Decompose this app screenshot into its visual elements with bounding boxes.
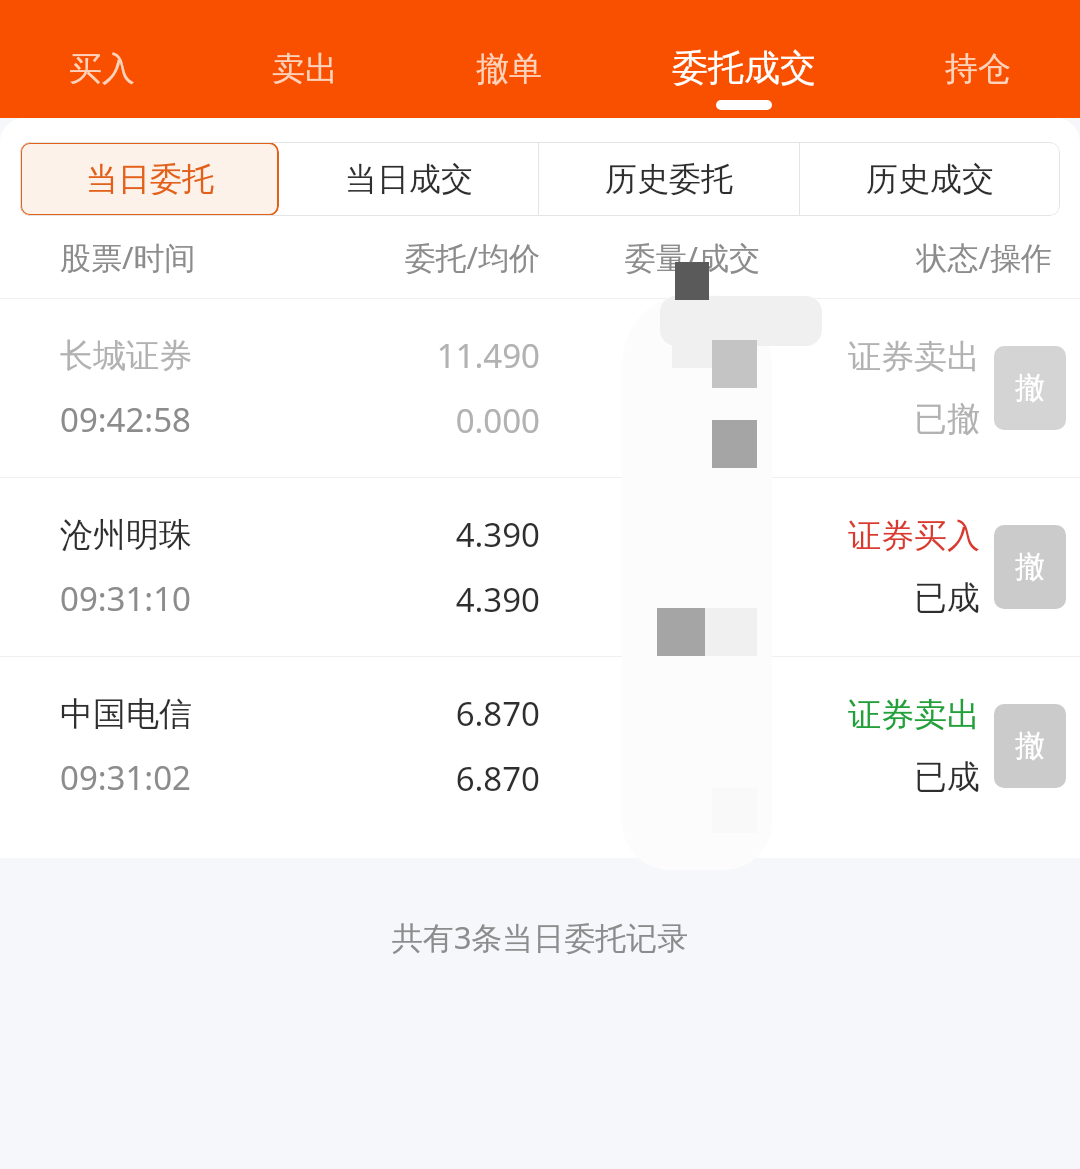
- staticText: 09:31:10: [60, 576, 191, 621]
- staticText: 6.870: [455, 756, 540, 801]
- staticText: 已成: [914, 577, 980, 619]
- button[interactable]: 长城证券: [0, 299, 1080, 477]
- staticText: 11.490: [436, 333, 540, 378]
- staticText: 6.870: [455, 691, 540, 736]
- staticText: 09:42:58: [60, 397, 191, 442]
- staticText: 委量/成交: [624, 236, 760, 278]
- staticText: 已成: [914, 756, 980, 798]
- button[interactable]: 委托成交: [611, 0, 876, 118]
- staticText: 长城证券: [60, 335, 192, 377]
- button[interactable]: 撤单 Cancel order: [994, 346, 1066, 430]
- staticText: 历史成交: [866, 159, 994, 199]
- staticText: 已撤: [914, 398, 980, 440]
- button[interactable]: 卖出: [203, 0, 407, 118]
- staticText: 中国电信: [60, 693, 192, 735]
- button[interactable]: 持仓: [876, 0, 1080, 118]
- staticText: 持仓: [945, 48, 1011, 90]
- button[interactable]: 撤单 Cancel order: [994, 704, 1066, 788]
- staticText: 撤: [1015, 548, 1045, 586]
- staticText: 当日委托: [86, 159, 214, 199]
- staticText: 委托/均价: [404, 236, 540, 278]
- button[interactable]: 中国电信: [0, 657, 1080, 835]
- staticText: 历史委托: [605, 159, 733, 199]
- staticText: 09:31:02: [60, 755, 191, 800]
- staticText: 4.390: [455, 577, 540, 622]
- button[interactable]: 当日委托: [20, 142, 279, 216]
- staticText: 状态/操作: [916, 236, 1052, 278]
- staticText: 0.000: [455, 398, 540, 443]
- staticText: 股票/时间: [60, 236, 196, 278]
- button[interactable]: 历史委托: [539, 142, 799, 216]
- staticText: 当日成交: [345, 159, 473, 199]
- staticText: 撤: [1015, 727, 1045, 765]
- staticText: 4.390: [455, 512, 540, 557]
- button[interactable]: 当日成交: [279, 142, 538, 216]
- button[interactable]: 撤单: [407, 0, 611, 118]
- staticText: 撤: [1015, 369, 1045, 407]
- staticText: 买入: [69, 48, 135, 90]
- staticText: 委托成交: [672, 45, 816, 90]
- button[interactable]: 撤单 Cancel order: [994, 525, 1066, 609]
- button[interactable]: 沧州明珠: [0, 478, 1080, 656]
- staticText: 卖出: [272, 48, 338, 90]
- staticText: 撤单: [476, 48, 542, 90]
- button[interactable]: 买入: [0, 0, 203, 118]
- staticText: 沧州明珠: [60, 514, 192, 556]
- staticText: 证券卖出: [848, 694, 980, 736]
- staticText: 证券卖出: [848, 336, 980, 378]
- button[interactable]: 历史成交: [800, 142, 1060, 216]
- staticText: 证券买入: [848, 515, 980, 557]
- staticText: 共有3条当日委托记录: [0, 916, 1080, 958]
